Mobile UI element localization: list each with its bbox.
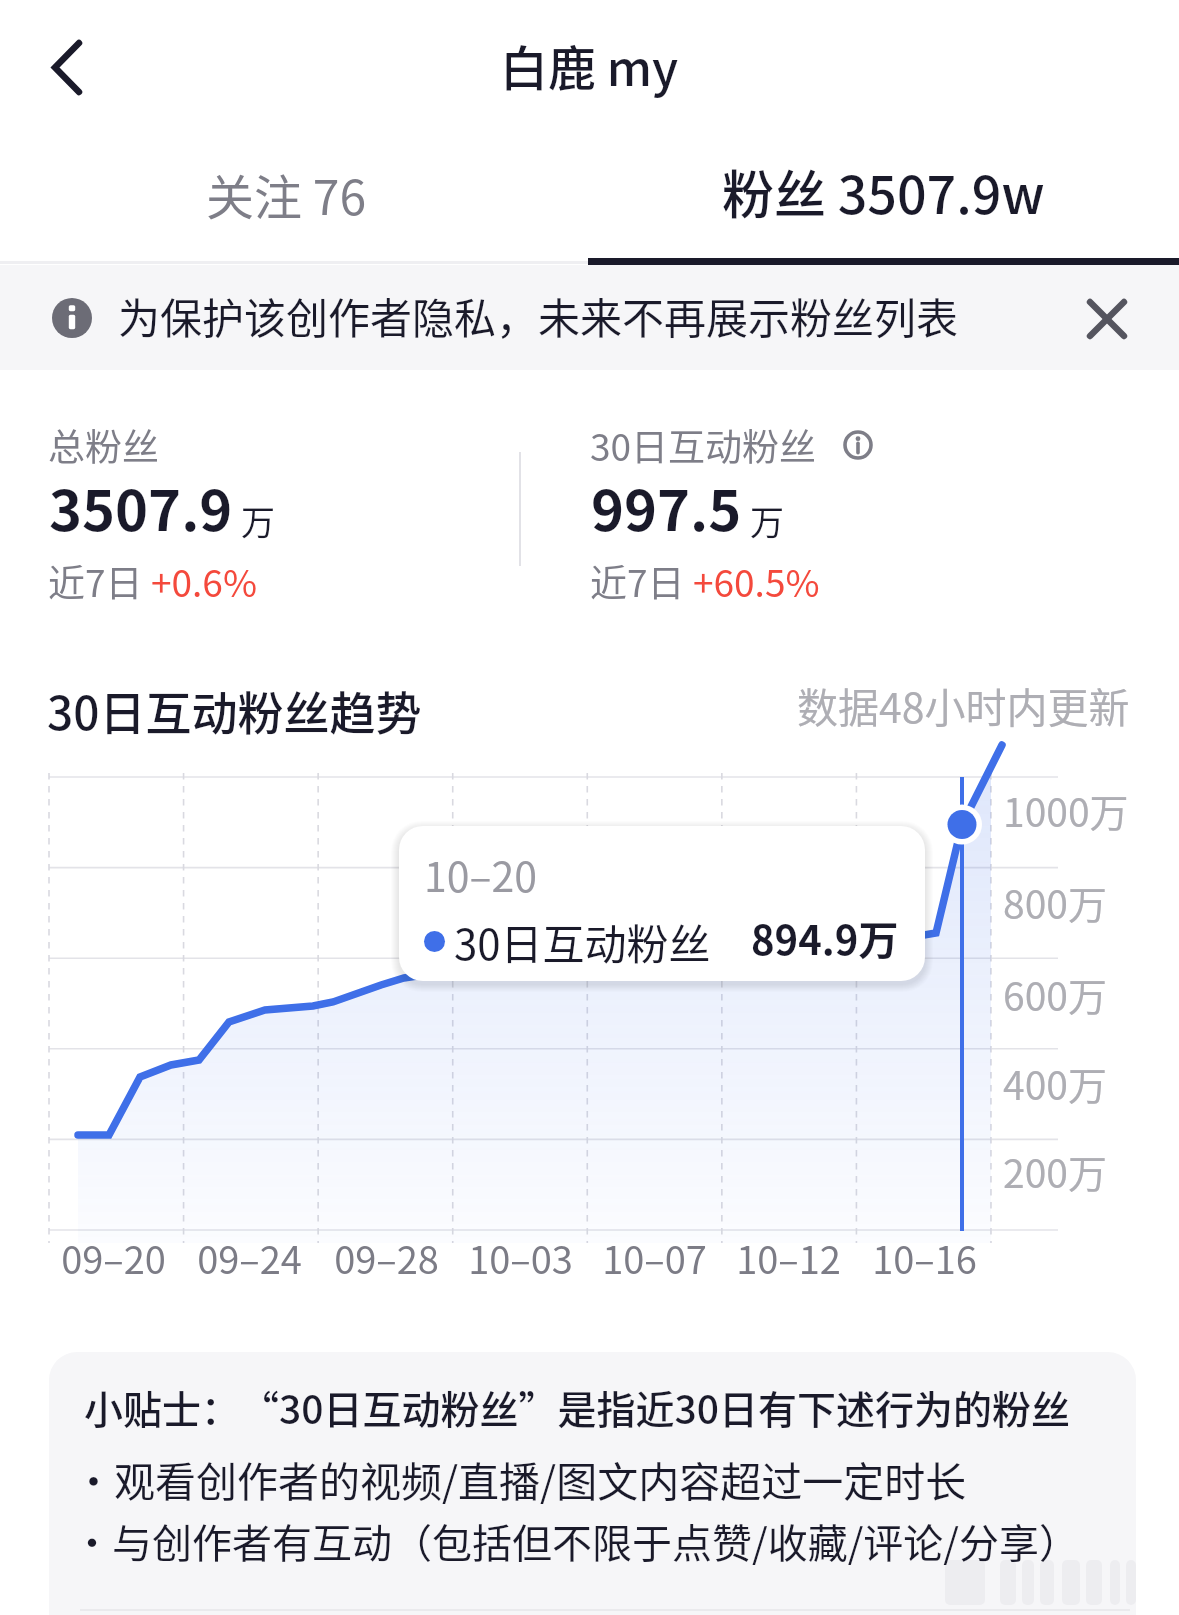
staticText: 白鹿 my [500,30,679,100]
staticText: 09–24 [197,1230,302,1285]
staticText: 1000万 [1003,782,1129,838]
staticText: 万 [750,496,784,545]
staticText: 997.5 [591,466,742,547]
staticText: 10–12 [736,1230,841,1285]
staticText: +60.5% [693,554,820,608]
staticText: 10–20 [424,844,537,903]
staticText: 894.9万 [751,909,899,967]
staticText: 200万 [1003,1143,1107,1199]
staticText: 小贴士：“30日互动粉丝”是指近30日有下述行为的粉丝 [84,1379,1070,1435]
staticText: 粉丝 3507.9w [722,154,1045,229]
staticText: 30日互动粉丝 [454,911,711,972]
staticText: 30日互动粉丝 [590,418,817,472]
staticText: 为保护该创作者隐私，未来不再展示粉丝列表 [118,285,959,346]
staticText: 09–20 [61,1230,166,1285]
button[interactable]: 关注 76 [0,135,590,265]
staticText: 总粉丝 [48,418,159,472]
staticText: 400万 [1003,1055,1107,1111]
staticText: 3507.9 [49,466,233,547]
staticText: 10–03 [468,1230,573,1285]
staticText: 800万 [1003,874,1107,930]
staticText: 关注 76 [206,159,367,229]
staticText: 数据48小时内更新 [797,675,1130,734]
staticText: 09–28 [334,1230,439,1285]
button[interactable]: 粉丝 3507.9w [590,135,1179,265]
staticText: 10–16 [872,1230,977,1285]
button[interactable]: Back [28,28,106,106]
staticText: 10–07 [602,1230,707,1285]
staticText: 600万 [1003,966,1107,1022]
staticText: ·与创作者有互动（包括但不限于点赞/收藏/评论/分享） [72,1512,1080,1570]
staticText: 近7日 [48,554,151,608]
staticText: 30日互动粉丝趋势 [47,677,422,744]
staticText: 近7日 [590,554,693,608]
button[interactable]: Close [1068,280,1146,358]
staticText: ·观看创作者的视频/直播/图文内容超过一定时长 [73,1449,967,1508]
staticText: +0.6% [151,554,257,608]
staticText: 万 [241,496,275,545]
